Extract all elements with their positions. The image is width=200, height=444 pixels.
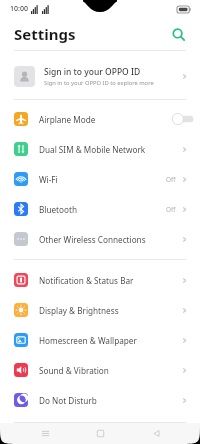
- button[interactable]: Wi-Fi: [0, 164, 200, 194]
- staticText: Sign in to your OPPO ID to explore more: [44, 79, 154, 87]
- staticText: Airplane Mode: [39, 114, 164, 125]
- staticText: Wi-Fi: [39, 174, 166, 185]
- button[interactable]: Notification & Status Bar: [0, 265, 200, 295]
- button[interactable]: Recents: [34, 423, 56, 444]
- staticText: Bluetooth: [39, 204, 166, 215]
- button[interactable]: Homescreen & Wallpaper: [0, 325, 200, 355]
- staticText: Settings: [14, 24, 76, 44]
- button[interactable]: Search: [167, 23, 189, 45]
- staticText: Notification & Status Bar: [39, 275, 181, 286]
- button[interactable]: Sound & Vibration: [0, 355, 200, 385]
- staticText: Display & Brightness: [39, 305, 181, 316]
- staticText: Off: [166, 205, 176, 214]
- button[interactable]: [170, 112, 196, 126]
- button[interactable]: Home: [89, 423, 111, 444]
- button[interactable]: Do Not Disturb: [0, 385, 200, 415]
- button[interactable]: Display & Brightness: [0, 295, 200, 325]
- staticText: Dual SIM & Mobile Network: [39, 144, 181, 155]
- staticText: 10:00: [10, 4, 28, 14]
- staticText: Other Wireless Connections: [39, 234, 181, 245]
- button[interactable]: Back: [145, 423, 167, 444]
- staticText: Homescreen & Wallpaper: [39, 335, 181, 346]
- button[interactable]: Airplane Mode: [0, 104, 200, 134]
- staticText: Off: [166, 175, 176, 184]
- staticText: Sound & Vibration: [39, 365, 181, 376]
- staticText: Sign in to your OPPO ID: [44, 66, 141, 78]
- staticText: Do Not Disturb: [39, 395, 181, 406]
- button[interactable]: Bluetooth: [0, 194, 200, 224]
- button[interactable]: Dual SIM & Mobile Network: [0, 134, 200, 164]
- button[interactable]: Other Wireless Connections: [0, 224, 200, 254]
- button[interactable]: Sign in to your OPPO ID: [0, 57, 200, 95]
